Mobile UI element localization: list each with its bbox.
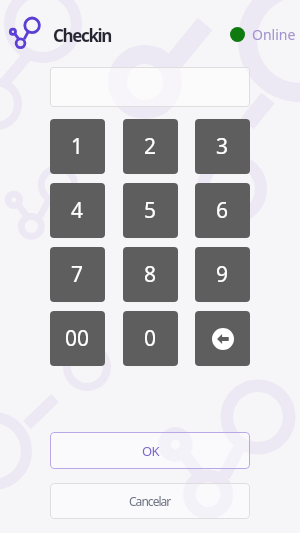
staticText: 00 [65, 324, 90, 353]
staticText: 9 [216, 260, 229, 289]
button[interactable]: Backspace [195, 311, 250, 366]
staticText: Online [252, 25, 296, 44]
staticText: 7 [71, 260, 84, 289]
button[interactable]: 3 [195, 119, 250, 174]
button[interactable]: 6 [195, 183, 250, 238]
button[interactable]: 0 [123, 311, 178, 366]
button[interactable]: 2 [123, 119, 178, 174]
staticText: Cancelar [129, 493, 171, 509]
button[interactable]: 9 [195, 247, 250, 302]
button[interactable]: 00 [50, 311, 105, 366]
staticText: 3 [216, 132, 229, 161]
staticText: 6 [216, 196, 229, 225]
staticText: 1 [71, 132, 84, 161]
staticText: 2 [144, 132, 157, 161]
button[interactable]: 4 [50, 183, 105, 238]
button[interactable]: 1 [50, 119, 105, 174]
staticText: 8 [144, 260, 157, 289]
button[interactable]: Cancelar [50, 483, 250, 519]
button[interactable]: 7 [50, 247, 105, 302]
button[interactable]: 5 [123, 183, 178, 238]
button[interactable]: 8 [123, 247, 178, 302]
staticText: OK [142, 442, 159, 460]
staticText: Checkin [53, 24, 112, 47]
button[interactable]: OK [50, 432, 250, 469]
staticText: 4 [71, 196, 84, 225]
other: Checkin logo [5, 13, 45, 53]
staticText: 0 [144, 324, 157, 353]
staticText: 5 [144, 196, 157, 225]
